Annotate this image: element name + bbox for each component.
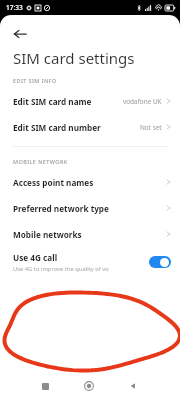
staticText: Not set xyxy=(140,123,162,132)
button[interactable]: Use 4G call toggle xyxy=(149,256,171,268)
button[interactable]: Recents xyxy=(34,375,56,397)
staticText: 17:33 xyxy=(6,3,23,12)
staticText: MOBILE NETWORK xyxy=(13,158,68,165)
button[interactable]: Use 4G call xyxy=(0,247,180,277)
button[interactable]: Access point names xyxy=(0,169,180,195)
button[interactable]: Edit SIM card name xyxy=(0,88,180,114)
button[interactable]: Back xyxy=(7,21,33,47)
staticText: Preferred network type xyxy=(13,203,109,214)
button[interactable]: Mobile networks xyxy=(0,221,180,247)
staticText: Edit SIM card number xyxy=(13,122,101,133)
staticText: Access point names xyxy=(13,177,94,188)
button[interactable]: Back xyxy=(122,375,144,397)
staticText: Edit SIM card name xyxy=(13,96,92,107)
staticText: Use 4G call xyxy=(13,252,58,263)
staticText: Mobile networks xyxy=(13,229,82,240)
staticText: vodafone UK xyxy=(123,97,162,106)
button[interactable]: Preferred network type xyxy=(0,195,180,221)
staticText: Use 4G to improve the quality of vo xyxy=(13,265,109,273)
staticText: EDIT SIM INFO xyxy=(13,77,57,84)
button[interactable]: Edit SIM card number xyxy=(0,114,180,140)
staticText: SIM card settings xyxy=(13,48,135,68)
button[interactable]: Home xyxy=(78,375,100,397)
